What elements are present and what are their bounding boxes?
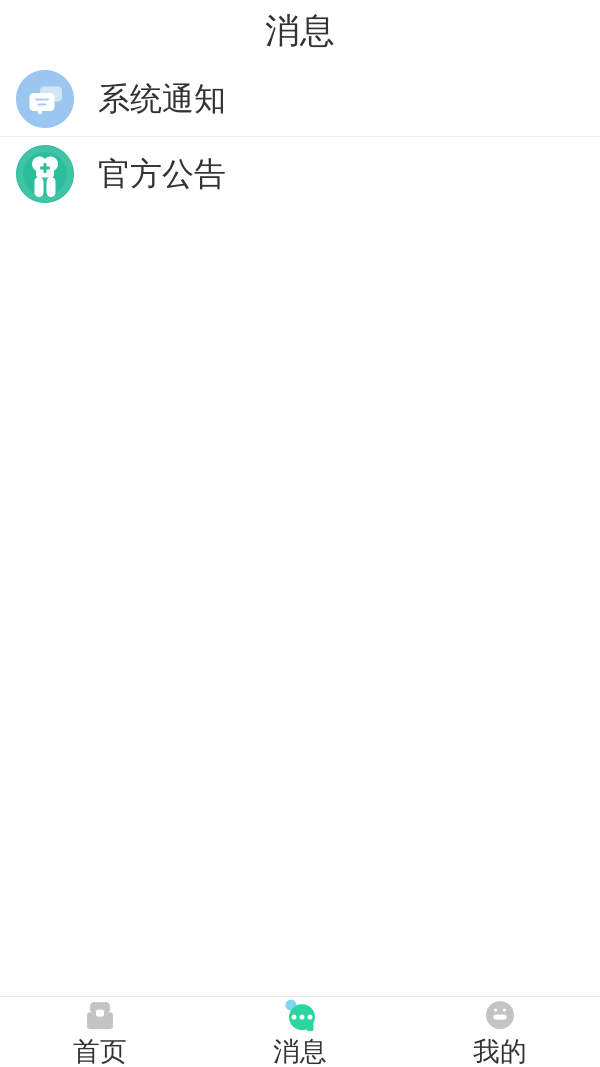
staticText: 官方公告 <box>98 154 226 194</box>
staticText: 我的 <box>473 1035 527 1067</box>
button[interactable]: 消息 <box>200 990 400 1067</box>
button[interactable]: 首页 <box>0 990 200 1067</box>
button[interactable]: 官方公告 <box>0 137 600 211</box>
staticText: 首页 <box>73 1035 127 1067</box>
staticText: 消息 <box>273 1035 327 1067</box>
button[interactable]: 系统通知 <box>0 62 600 136</box>
staticText: 消息 <box>265 10 335 52</box>
button[interactable]: 我的 <box>400 990 600 1067</box>
staticText: 系统通知 <box>98 79 226 119</box>
